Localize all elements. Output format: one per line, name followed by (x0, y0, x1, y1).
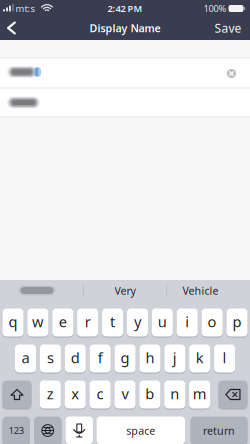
staticText: Vehicle (182, 283, 218, 298)
staticText: q (8, 312, 17, 331)
staticText: f (98, 348, 103, 367)
button[interactable]: Typed text suggestion (0, 277, 78, 303)
button[interactable]: Back (6, 21, 16, 34)
button[interactable]: Very (84, 277, 166, 303)
button[interactable]: f (90, 344, 111, 372)
button[interactable]: s (40, 344, 61, 372)
button[interactable]: h (139, 344, 160, 372)
staticText: k (196, 348, 204, 367)
staticText: z (47, 384, 54, 403)
button[interactable]: t (102, 308, 123, 336)
button[interactable]: k (189, 344, 210, 372)
staticText: o (208, 312, 217, 331)
button[interactable]: o (202, 308, 223, 336)
button[interactable]: Numbers (2, 416, 30, 444)
staticText: Very (114, 283, 135, 298)
staticText: x (71, 384, 79, 403)
button[interactable]: Delete (218, 380, 247, 408)
button[interactable]: Dictate (65, 416, 93, 444)
button[interactable]: b (139, 380, 160, 408)
button[interactable]: v (114, 380, 135, 408)
button[interactable]: g (115, 344, 136, 372)
button[interactable]: j (164, 344, 185, 372)
staticText: c (97, 384, 104, 403)
staticText: Display Name (89, 21, 160, 35)
button[interactable]: q (2, 308, 23, 336)
staticText: n (170, 384, 179, 403)
button[interactable]: d (65, 344, 86, 372)
staticText: 123 (9, 424, 24, 437)
staticText: t (110, 312, 115, 331)
staticText: s (47, 348, 54, 367)
staticText: e (59, 312, 67, 331)
button[interactable]: Display name text field (0, 58, 250, 88)
button[interactable]: Next keyboard (34, 416, 61, 444)
staticText: mt:s (15, 2, 34, 15)
button[interactable]: Second text field (0, 88, 250, 117)
staticText: i (185, 312, 189, 331)
staticText: a (21, 348, 29, 367)
button[interactable]: w (27, 308, 48, 336)
staticText: 2:42 PM (107, 2, 142, 15)
staticText: h (145, 348, 154, 367)
button[interactable]: p (226, 308, 247, 336)
button[interactable]: n (164, 380, 185, 408)
button[interactable]: u (152, 308, 173, 336)
button[interactable]: Clear text (225, 67, 238, 80)
staticText: p (232, 312, 241, 331)
staticText: space (126, 423, 155, 438)
button[interactable]: m (189, 380, 210, 408)
button[interactable]: y (127, 308, 148, 336)
button[interactable]: Shift (2, 380, 31, 408)
staticText: r (85, 312, 91, 331)
staticText: return (203, 423, 235, 438)
staticText: w (32, 312, 44, 331)
button[interactable]: Vehicle (159, 277, 241, 303)
button[interactable]: a (15, 344, 36, 372)
staticText: 100% (203, 2, 226, 15)
staticText: v (121, 384, 128, 403)
staticText: g (121, 348, 130, 367)
staticText: b (145, 384, 154, 403)
staticText: y (134, 312, 141, 331)
staticText: u (158, 312, 167, 331)
button[interactable]: c (90, 380, 111, 408)
staticText: Save (214, 20, 241, 36)
button[interactable]: r (77, 308, 98, 336)
button[interactable]: z (40, 380, 61, 408)
button[interactable]: Return (190, 416, 247, 444)
button[interactable]: e (52, 308, 73, 336)
button[interactable]: Save (210, 17, 246, 39)
button[interactable]: x (65, 380, 86, 408)
button[interactable]: i (177, 308, 198, 336)
staticText: d (71, 348, 80, 367)
button[interactable]: Space (96, 416, 185, 444)
staticText: j (173, 348, 177, 367)
button[interactable]: l (214, 344, 235, 372)
staticText: l (223, 348, 227, 367)
staticText: m (193, 384, 207, 403)
